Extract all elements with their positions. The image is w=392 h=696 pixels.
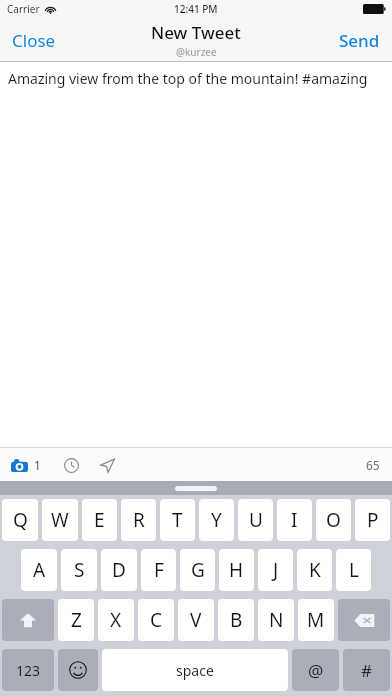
button[interactable]: E bbox=[82, 499, 117, 541]
button[interactable]: A bbox=[21, 549, 57, 591]
staticText: 65 bbox=[366, 457, 380, 473]
staticText: F bbox=[154, 557, 164, 583]
button[interactable]: Emoji bbox=[58, 649, 98, 691]
staticText: @ bbox=[308, 659, 324, 682]
staticText: 123 bbox=[16, 661, 41, 680]
staticText: Close bbox=[12, 29, 56, 52]
button[interactable]: P bbox=[355, 499, 390, 541]
button[interactable]: K bbox=[297, 549, 332, 591]
staticText: Y bbox=[211, 507, 222, 533]
button[interactable]: # bbox=[343, 649, 390, 691]
button[interactable]: F bbox=[141, 549, 176, 591]
button[interactable]: space bbox=[102, 649, 288, 691]
staticText: L bbox=[349, 557, 359, 583]
staticText: I bbox=[291, 507, 298, 533]
staticText: K bbox=[309, 557, 321, 583]
staticText: U bbox=[249, 507, 263, 533]
button[interactable]: Send bbox=[327, 20, 392, 61]
button[interactable]: M bbox=[298, 599, 334, 641]
staticText: Amazing view from the top of the mountai… bbox=[8, 69, 368, 88]
staticText: G bbox=[191, 557, 205, 583]
button[interactable]: 123 bbox=[2, 649, 54, 691]
staticText: Q bbox=[13, 507, 28, 533]
button[interactable]: X bbox=[98, 599, 134, 641]
button[interactable]: Backspace bbox=[338, 599, 390, 641]
staticText: H bbox=[229, 557, 244, 583]
staticText: M bbox=[307, 607, 325, 633]
staticText: V bbox=[190, 607, 202, 633]
staticText: A bbox=[33, 557, 46, 583]
staticText: @kurzee bbox=[176, 45, 217, 59]
staticText: X bbox=[110, 607, 122, 633]
button[interactable]: Amazing view from the top of the mountai… bbox=[0, 62, 392, 447]
staticText: O bbox=[326, 507, 341, 533]
button[interactable]: Z bbox=[58, 599, 94, 641]
staticText: E bbox=[94, 507, 105, 533]
staticText: D bbox=[112, 557, 126, 583]
staticText: # bbox=[361, 659, 372, 682]
button[interactable]: L bbox=[336, 549, 371, 591]
button[interactable]: Close bbox=[0, 20, 68, 61]
staticText: space bbox=[176, 661, 214, 680]
button[interactable]: H bbox=[219, 549, 254, 591]
staticText: 12:41 PM bbox=[174, 2, 218, 16]
staticText: T bbox=[172, 507, 183, 533]
staticText: S bbox=[74, 557, 85, 583]
button[interactable]: Location bbox=[96, 454, 119, 477]
staticText: W bbox=[51, 507, 69, 533]
button[interactable]: Shift bbox=[2, 599, 54, 641]
button[interactable]: C bbox=[138, 599, 174, 641]
staticText: N bbox=[269, 607, 284, 633]
button[interactable]: R bbox=[121, 499, 156, 541]
staticText: 1 bbox=[34, 457, 41, 473]
button[interactable]: T bbox=[160, 499, 195, 541]
button[interactable]: Hide keyboard bbox=[175, 486, 217, 491]
staticText: New Tweet bbox=[151, 21, 241, 44]
button[interactable]: S bbox=[61, 549, 97, 591]
button[interactable]: O bbox=[316, 499, 351, 541]
button[interactable]: N bbox=[258, 599, 294, 641]
staticText: P bbox=[367, 507, 379, 533]
button[interactable]: U bbox=[238, 499, 273, 541]
staticText: B bbox=[230, 607, 243, 633]
button[interactable]: I bbox=[277, 499, 312, 541]
staticText: J bbox=[273, 557, 279, 583]
button[interactable]: @ bbox=[292, 649, 339, 691]
staticText: C bbox=[150, 607, 163, 633]
button[interactable]: Y bbox=[199, 499, 234, 541]
button[interactable]: B bbox=[218, 599, 254, 641]
button[interactable]: D bbox=[101, 549, 137, 591]
button[interactable]: Q bbox=[2, 499, 38, 541]
button[interactable]: V bbox=[178, 599, 214, 641]
staticText: Carrier bbox=[7, 2, 40, 16]
button[interactable]: G bbox=[180, 549, 215, 591]
button[interactable]: Add photo bbox=[9, 453, 43, 477]
staticText: Send bbox=[339, 29, 380, 52]
button[interactable]: J bbox=[258, 549, 293, 591]
staticText: Z bbox=[71, 607, 82, 633]
staticText: R bbox=[133, 507, 145, 533]
button[interactable]: W bbox=[42, 499, 78, 541]
button[interactable]: Schedule bbox=[60, 454, 83, 477]
